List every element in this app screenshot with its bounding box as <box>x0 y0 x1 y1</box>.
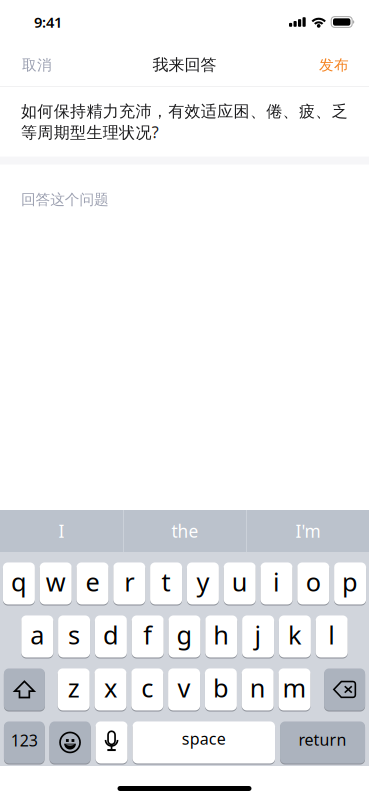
staticText: return <box>299 729 347 750</box>
button[interactable]: d <box>95 615 127 658</box>
staticText: q <box>11 565 27 598</box>
button[interactable]: Dictation <box>95 721 127 764</box>
button[interactable]: z <box>58 668 90 711</box>
button[interactable]: j <box>242 615 274 658</box>
button[interactable]: a <box>21 615 53 658</box>
staticText: l <box>328 618 335 651</box>
staticText: n <box>250 671 266 704</box>
button[interactable]: s <box>58 615 90 658</box>
staticText: j <box>255 618 262 651</box>
button[interactable]: e <box>76 562 108 605</box>
button[interactable]: u <box>224 562 256 605</box>
button[interactable]: q <box>3 562 35 605</box>
staticText: s <box>68 618 80 651</box>
button[interactable]: k <box>279 615 311 658</box>
staticText: the <box>171 519 198 542</box>
button[interactable]: space <box>132 721 275 764</box>
staticText: z <box>68 671 80 704</box>
button[interactable]: 123 <box>4 721 44 764</box>
button[interactable]: return <box>280 721 365 764</box>
staticText: 回答这个问题 <box>21 191 109 209</box>
staticText: 我来回答 <box>152 55 216 75</box>
button[interactable]: f <box>132 615 164 658</box>
button[interactable]: 取消 <box>0 44 90 86</box>
staticText: d <box>103 618 119 651</box>
staticText: 123 <box>11 730 38 751</box>
button[interactable]: the <box>124 510 246 552</box>
staticText: k <box>288 618 302 651</box>
staticText: 取消 <box>22 56 52 74</box>
button[interactable]: o <box>297 562 329 605</box>
staticText: u <box>232 565 248 598</box>
button[interactable]: m <box>278 668 310 711</box>
button[interactable]: n <box>242 668 274 711</box>
staticText: m <box>282 671 306 704</box>
button[interactable]: r <box>113 562 145 605</box>
staticText: r <box>124 565 134 598</box>
button[interactable]: t <box>150 562 182 605</box>
button[interactable]: 发布 <box>279 44 369 86</box>
staticText: a <box>30 618 44 651</box>
staticText: o <box>306 565 321 598</box>
button[interactable]: w <box>40 562 72 605</box>
staticText: space <box>182 728 226 749</box>
button[interactable]: v <box>168 668 200 711</box>
button[interactable]: Emoji <box>49 721 90 764</box>
button[interactable]: p <box>334 562 366 605</box>
staticText: b <box>213 671 229 704</box>
button[interactable]: b <box>205 668 237 711</box>
button[interactable]: Delete <box>324 668 365 711</box>
staticText: i <box>273 565 280 598</box>
staticText: w <box>46 565 66 598</box>
button[interactable]: c <box>131 668 163 711</box>
staticText: I'm <box>295 519 320 542</box>
button[interactable]: y <box>187 562 219 605</box>
button[interactable]: I'm <box>247 510 369 552</box>
button[interactable]: i <box>260 562 292 605</box>
button[interactable]: h <box>205 615 237 658</box>
staticText: I <box>58 519 64 542</box>
staticText: x <box>104 671 117 704</box>
staticText: e <box>85 565 99 598</box>
staticText: 如何保持精力充沛，有效适应困、倦、疲、乏等周期型生理状况? <box>21 102 348 143</box>
button[interactable]: l <box>316 615 348 658</box>
button[interactable]: x <box>94 668 126 711</box>
button[interactable]: Shift <box>4 668 45 711</box>
staticText: 发布 <box>319 56 349 74</box>
staticText: f <box>143 618 152 651</box>
staticText: p <box>342 565 358 598</box>
staticText: c <box>141 671 153 704</box>
staticText: h <box>213 618 229 651</box>
staticText: t <box>162 565 171 598</box>
staticText: g <box>176 618 192 651</box>
button[interactable]: I <box>0 510 123 552</box>
button[interactable]: g <box>168 615 200 658</box>
staticText: y <box>196 565 209 598</box>
staticText: v <box>178 671 191 704</box>
staticText: 9:41 <box>34 12 62 32</box>
